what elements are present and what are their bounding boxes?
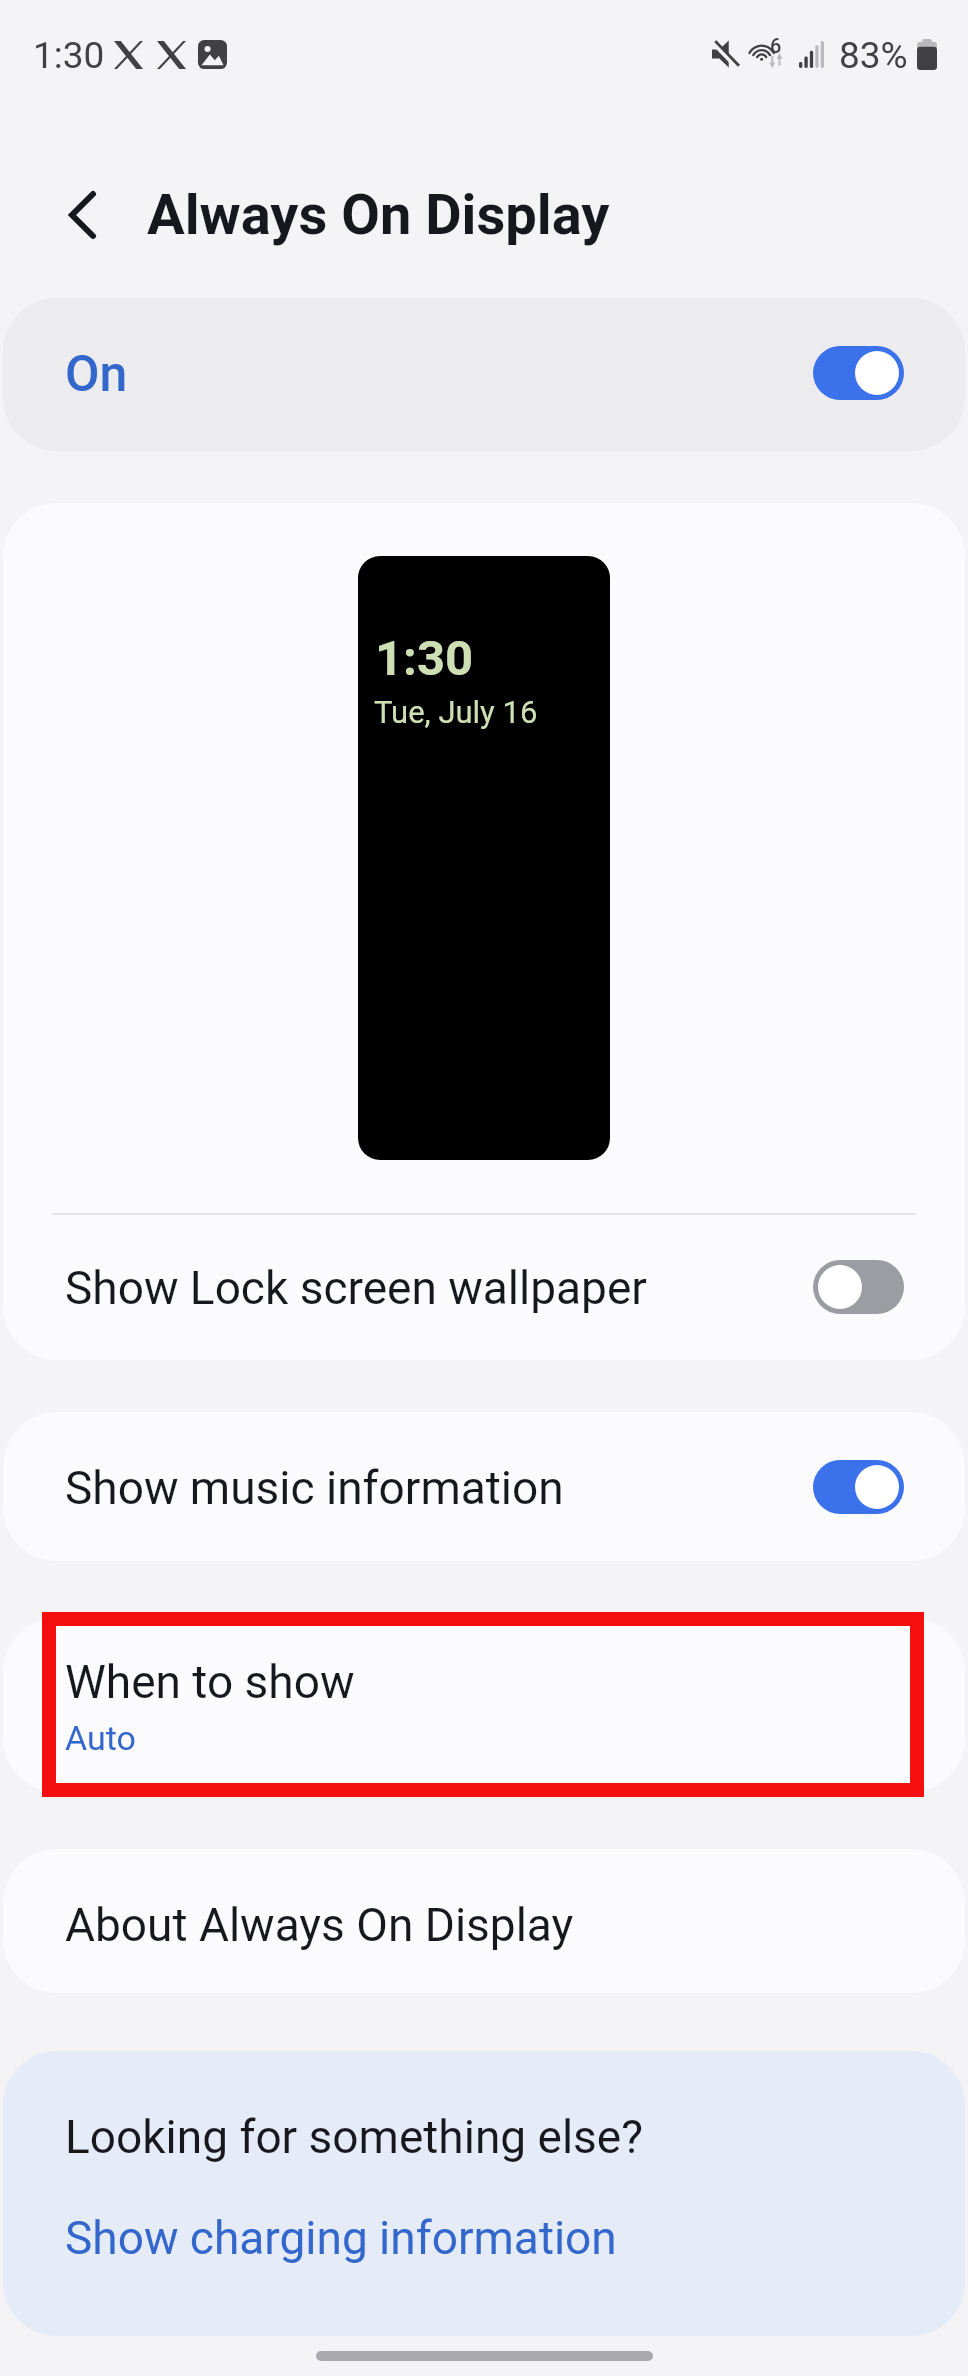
staticText: 1:30 [375, 630, 474, 687]
button[interactable]: Show Lock screen wallpaper [3, 1215, 965, 1357]
button[interactable]: Turn off [813, 346, 904, 400]
staticText: On [65, 345, 128, 404]
button[interactable]: Show charging information [3, 2201, 965, 2281]
staticText: Auto [65, 1718, 136, 1758]
staticText: When to show [65, 1655, 355, 1709]
button[interactable]: About Always On Display [3, 1849, 965, 1993]
button[interactable]: Show music information [3, 1412, 965, 1561]
staticText: About Always On Display [65, 1898, 574, 1952]
button[interactable]: When to show, Auto [3, 1618, 965, 1792]
button[interactable]: Turn on [813, 1260, 904, 1314]
button[interactable]: Always On Display on [3, 298, 965, 451]
staticText: Show music information [65, 1461, 564, 1515]
button[interactable]: Turn off [813, 1460, 904, 1514]
staticText: Show Lock screen wallpaper [65, 1261, 647, 1315]
staticText: Looking for something else? [65, 2110, 643, 2164]
staticText: Always On Display [147, 182, 610, 248]
staticText: Tue, July 16 [374, 694, 538, 730]
button[interactable]: Navigate up [40, 173, 124, 257]
staticText: Show charging information [65, 2211, 617, 2265]
staticText: 6 [770, 34, 782, 57]
staticText: 1:30 [33, 34, 105, 77]
staticText: 83% [839, 34, 908, 77]
